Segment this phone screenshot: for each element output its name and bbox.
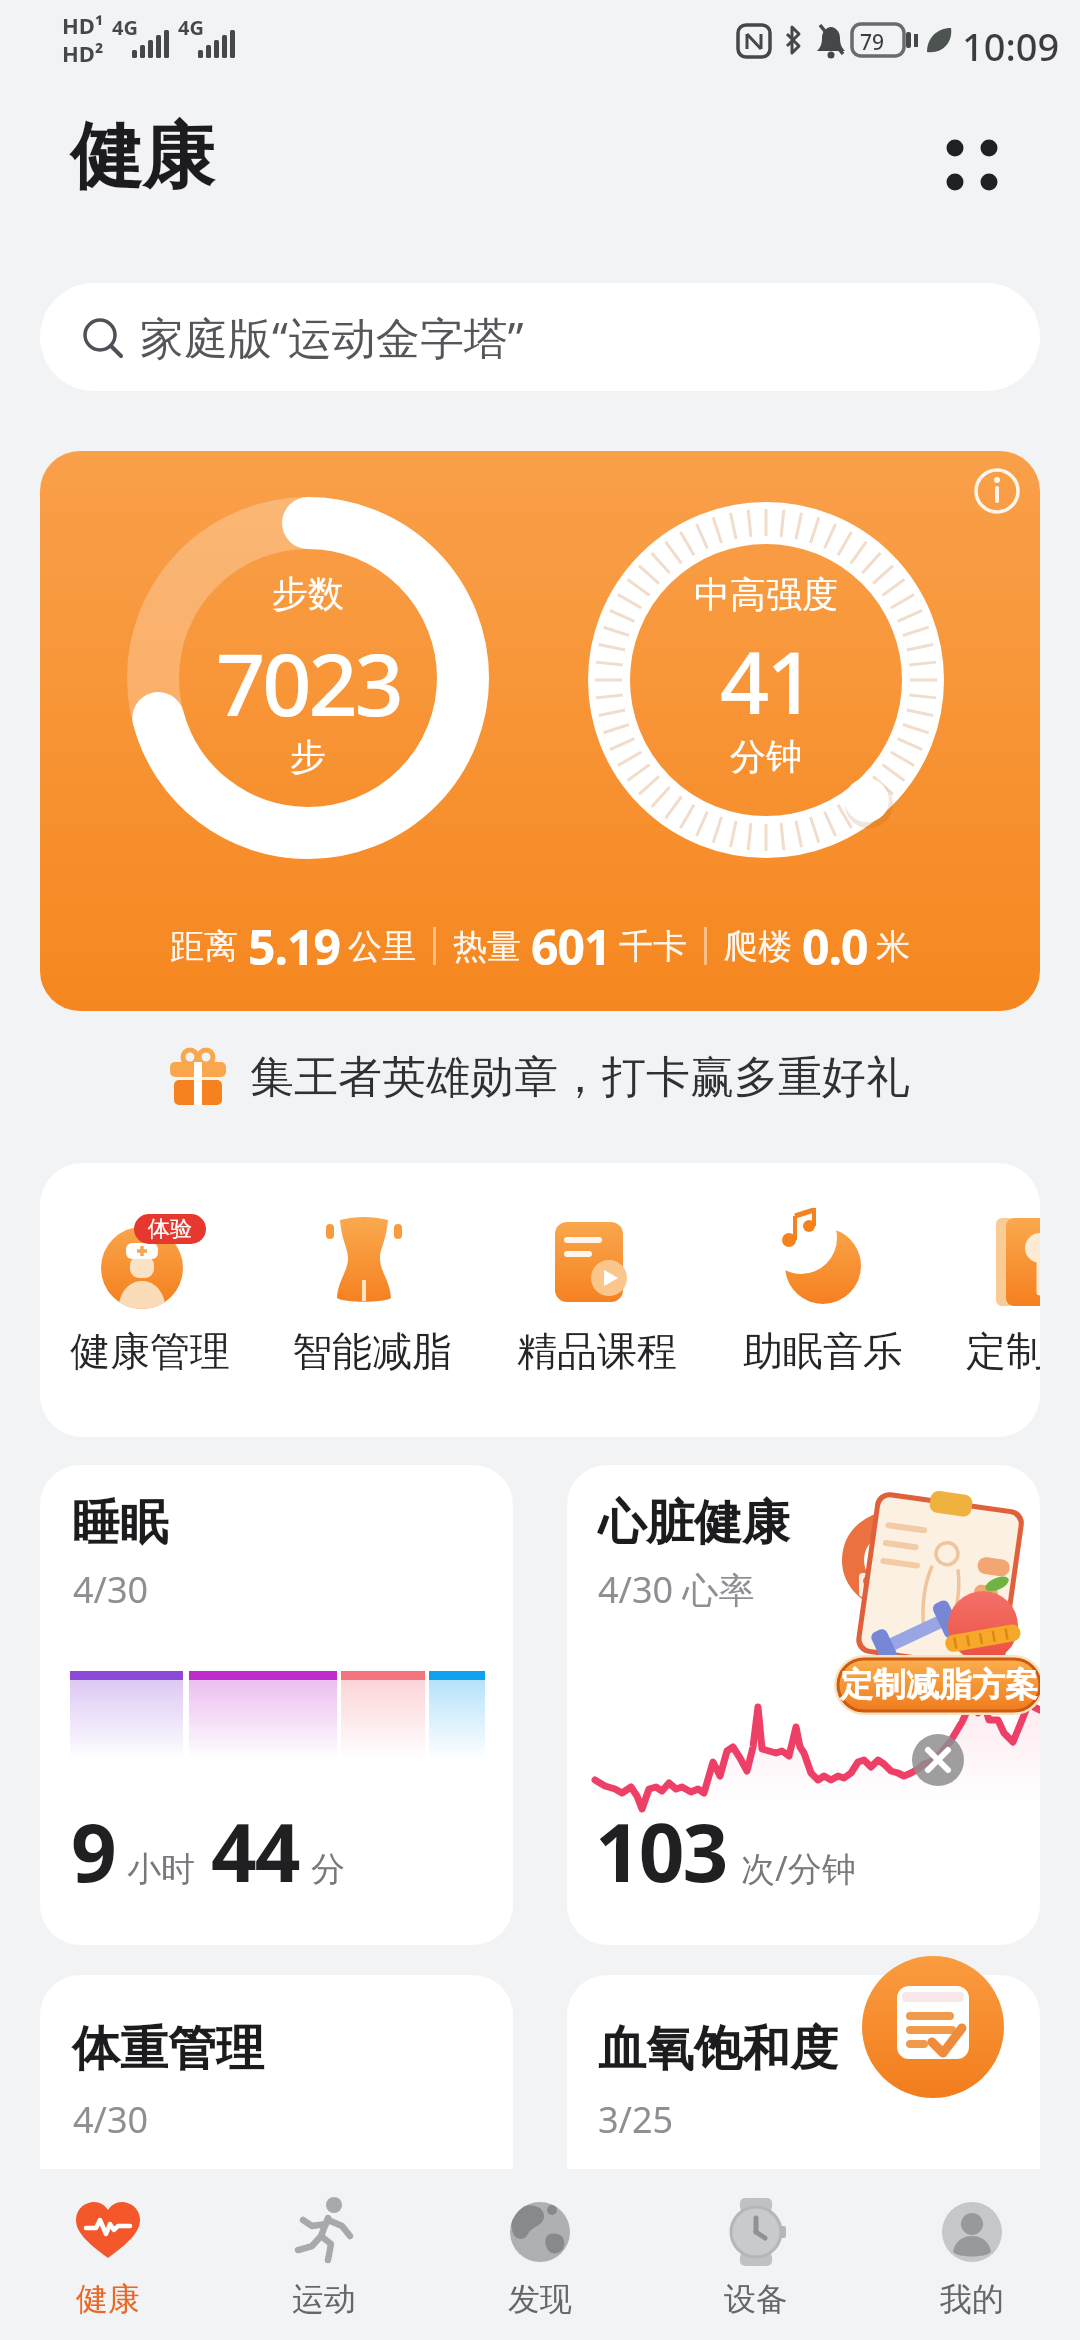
staticText: 智能减脂 — [292, 1326, 452, 1376]
staticText: 41 — [720, 622, 813, 739]
staticText: 步数 — [272, 571, 344, 616]
staticText: 体重管理 — [72, 2019, 264, 2079]
staticText: 分 — [311, 1848, 345, 1891]
staticText: 米 — [876, 925, 910, 968]
staticText: 44 — [211, 1796, 299, 1905]
button[interactable]: 运动 — [216, 2169, 432, 2340]
staticText: 9 — [71, 1796, 115, 1905]
staticText: 103 — [595, 1796, 727, 1905]
button[interactable]: 设备 — [648, 2169, 864, 2340]
staticText: 小时 — [127, 1848, 195, 1891]
staticText: 步 — [290, 734, 326, 779]
staticText: 家庭版“运动金字塔” — [140, 307, 524, 367]
staticText: 4/30 — [73, 1565, 149, 1614]
staticText: 公里 — [348, 925, 416, 968]
staticText: 体验 — [148, 1215, 192, 1243]
staticText: 运动 — [292, 2279, 356, 2319]
button[interactable]: 助眠音乐 — [733, 1173, 913, 1413]
staticText: 集王者英雄勋章，打卡赢多重好礼 — [250, 1050, 910, 1105]
staticText: 601 — [531, 914, 611, 979]
staticText: 千卡 — [619, 925, 687, 968]
staticText: HD² — [62, 38, 104, 68]
staticText: 4/30 心率 — [598, 1565, 755, 1614]
staticText: 热量 — [453, 925, 521, 968]
button[interactable]: 家庭版“运动金字塔” — [40, 283, 1040, 391]
staticText: 4G — [178, 14, 204, 41]
button[interactable]: 定制食谱 — [956, 1173, 1040, 1413]
staticText: 爬楼 — [724, 925, 792, 968]
staticText: 健康管理 — [70, 1326, 230, 1376]
button[interactable]: 发现 — [432, 2169, 648, 2340]
button[interactable]: 体重管理 — [40, 1975, 513, 2169]
staticText: 设备 — [724, 2279, 788, 2319]
staticText: 精品课程 — [517, 1326, 677, 1376]
button[interactable]: 智能减脂 — [282, 1173, 462, 1413]
staticText: 4G — [112, 14, 138, 41]
button[interactable]: 健康管理 — [60, 1173, 240, 1413]
staticText: 5.19 — [248, 914, 340, 979]
button[interactable]: 睡眠 — [40, 1465, 513, 1945]
staticText: 心脏健康 — [598, 1493, 790, 1553]
staticText: 79 — [860, 28, 885, 57]
staticText: 血氧饱和度 — [598, 2019, 838, 2079]
staticText: 健康 — [76, 2279, 140, 2319]
staticText: 4/30 — [73, 2095, 149, 2144]
staticText: 健康 — [70, 112, 214, 203]
button[interactable]: 精品课程 — [507, 1173, 687, 1413]
button[interactable]: 步数 — [40, 451, 1040, 1011]
button[interactable]: 健康 — [0, 2169, 216, 2340]
staticText: 我的 — [940, 2279, 1004, 2319]
button[interactable]: 血氧饱和度 — [567, 1975, 1040, 2169]
staticText: 中高强度 — [694, 572, 838, 617]
staticText: 0.0 — [802, 914, 868, 979]
staticText: 10:09 — [962, 20, 1060, 72]
staticText: 3/25 — [598, 2095, 674, 2144]
staticText: 助眠音乐 — [743, 1326, 903, 1376]
staticText: 距离 — [170, 925, 238, 968]
staticText: 睡眠 — [72, 1493, 168, 1553]
button[interactable]: 我的 — [864, 2169, 1080, 2340]
staticText: 发现 — [508, 2279, 572, 2319]
staticText: 分钟 — [730, 734, 802, 779]
button[interactable]: 集王者英雄勋章，打卡赢多重好礼 — [0, 1031, 1080, 1123]
staticText: 7023 — [216, 624, 401, 741]
staticText: 定制食谱 — [966, 1326, 1040, 1376]
staticText: 次/分钟 — [741, 1845, 856, 1891]
button[interactable]: 心脏健康 — [567, 1465, 1040, 1945]
staticText: HD¹ — [62, 10, 104, 40]
staticText: 定制减脂方案 — [840, 1664, 1038, 1706]
